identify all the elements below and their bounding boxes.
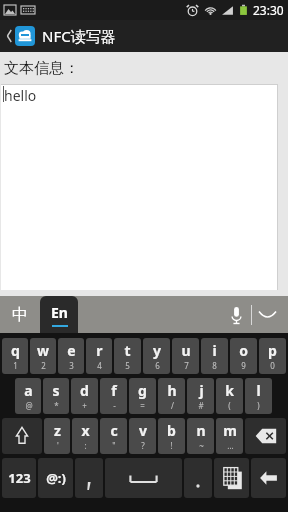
staticText: : [84, 440, 87, 451]
staticText: h [167, 381, 177, 400]
staticText: ' [57, 440, 59, 451]
staticText: i [212, 341, 217, 360]
staticText: c [110, 421, 118, 440]
button[interactable]: f [100, 378, 127, 414]
button[interactable]: Comma [75, 458, 103, 498]
button[interactable]: q [2, 338, 28, 374]
staticText: En [51, 303, 68, 322]
button[interactable]: c [100, 418, 127, 454]
staticText: 文本信息： [4, 59, 79, 78]
staticText: ? [141, 440, 145, 451]
button[interactable]: l [245, 378, 272, 414]
staticText: a [24, 381, 33, 400]
staticText: @:) [46, 469, 66, 487]
staticText: 123 [8, 469, 31, 487]
button[interactable]: y [143, 338, 170, 374]
staticText: ) [257, 400, 260, 411]
staticText: / [171, 400, 174, 411]
staticText: * [54, 400, 59, 411]
staticText: - [113, 400, 116, 411]
staticText: hello [4, 86, 37, 105]
staticText: ( [228, 400, 231, 411]
button[interactable]: m [216, 418, 243, 454]
button[interactable]: @:) [38, 458, 73, 498]
button[interactable]: k [216, 378, 243, 414]
staticText: d [80, 381, 89, 400]
button[interactable]: Hide keyboard [252, 300, 282, 330]
button[interactable]: Backspace [245, 418, 286, 454]
staticText: u [181, 341, 191, 360]
staticText: 8 [212, 360, 217, 371]
staticText: m [223, 421, 237, 440]
staticText: f [111, 381, 117, 400]
button[interactable]: Input method [214, 458, 249, 498]
button[interactable]: j [187, 378, 214, 414]
button[interactable]: Shift [2, 418, 42, 454]
staticText: 中 [12, 305, 28, 325]
staticText: n [196, 421, 206, 440]
staticText: q [11, 341, 20, 360]
staticText: s [52, 381, 60, 400]
button[interactable]: g [129, 378, 156, 414]
staticText: 9 [241, 360, 246, 371]
staticText: 4 [97, 360, 102, 371]
button[interactable]: w [30, 338, 56, 374]
staticText: 0 [270, 360, 275, 371]
staticText: k [225, 381, 234, 400]
staticText: = [140, 400, 145, 411]
button[interactable]: Space [105, 458, 182, 498]
button[interactable]: h [158, 378, 185, 414]
staticText: y [153, 341, 161, 360]
button[interactable]: En [40, 296, 78, 333]
staticText: 6 [155, 360, 160, 371]
staticText: x [81, 421, 90, 440]
button[interactable]: e [58, 338, 84, 374]
staticText: o [239, 341, 248, 360]
staticText: + [82, 400, 87, 411]
button[interactable]: r [86, 338, 112, 374]
staticText: 5 [125, 360, 130, 371]
button[interactable]: t [114, 338, 141, 374]
button[interactable]: Voice input [221, 300, 251, 330]
staticText: v [139, 421, 147, 440]
staticText: # [198, 400, 204, 411]
button[interactable]: o [230, 338, 257, 374]
button[interactable]: Back [4, 20, 36, 52]
button[interactable]: z [44, 418, 70, 454]
staticText: r [96, 341, 103, 360]
staticText: 1 [13, 360, 18, 371]
button[interactable]: x [72, 418, 98, 454]
staticText: 3 [69, 360, 74, 371]
staticText: b [167, 421, 176, 440]
button[interactable]: i [201, 338, 228, 374]
staticText: 7 [184, 360, 189, 371]
button[interactable]: 中 [0, 296, 40, 333]
staticText: NFC读写器 [42, 26, 116, 46]
staticText: e [67, 341, 76, 360]
button[interactable]: Enter [251, 458, 286, 498]
staticText: p [268, 341, 277, 360]
staticText: ! [170, 440, 173, 451]
button[interactable]: v [129, 418, 156, 454]
staticText: l [256, 381, 261, 400]
button[interactable]: Period [184, 458, 212, 498]
button[interactable]: u [172, 338, 199, 374]
staticText: j [199, 381, 204, 400]
button[interactable]: b [158, 418, 185, 454]
staticText: z [54, 421, 61, 440]
button[interactable]: d [71, 378, 98, 414]
staticText: g [138, 381, 147, 400]
staticText: w [37, 341, 49, 360]
button[interactable]: 123 [2, 458, 36, 498]
button[interactable]: s [43, 378, 69, 414]
staticText: 2 [41, 360, 46, 371]
button[interactable]: p [259, 338, 286, 374]
staticText: @ [25, 400, 33, 411]
staticText: t [124, 341, 131, 360]
staticText: ~ [199, 440, 204, 451]
staticText: " [112, 440, 116, 451]
button[interactable]: n [187, 418, 214, 454]
staticText: ... [227, 440, 234, 451]
button[interactable]: hello [1, 84, 278, 290]
button[interactable]: a [15, 378, 41, 414]
